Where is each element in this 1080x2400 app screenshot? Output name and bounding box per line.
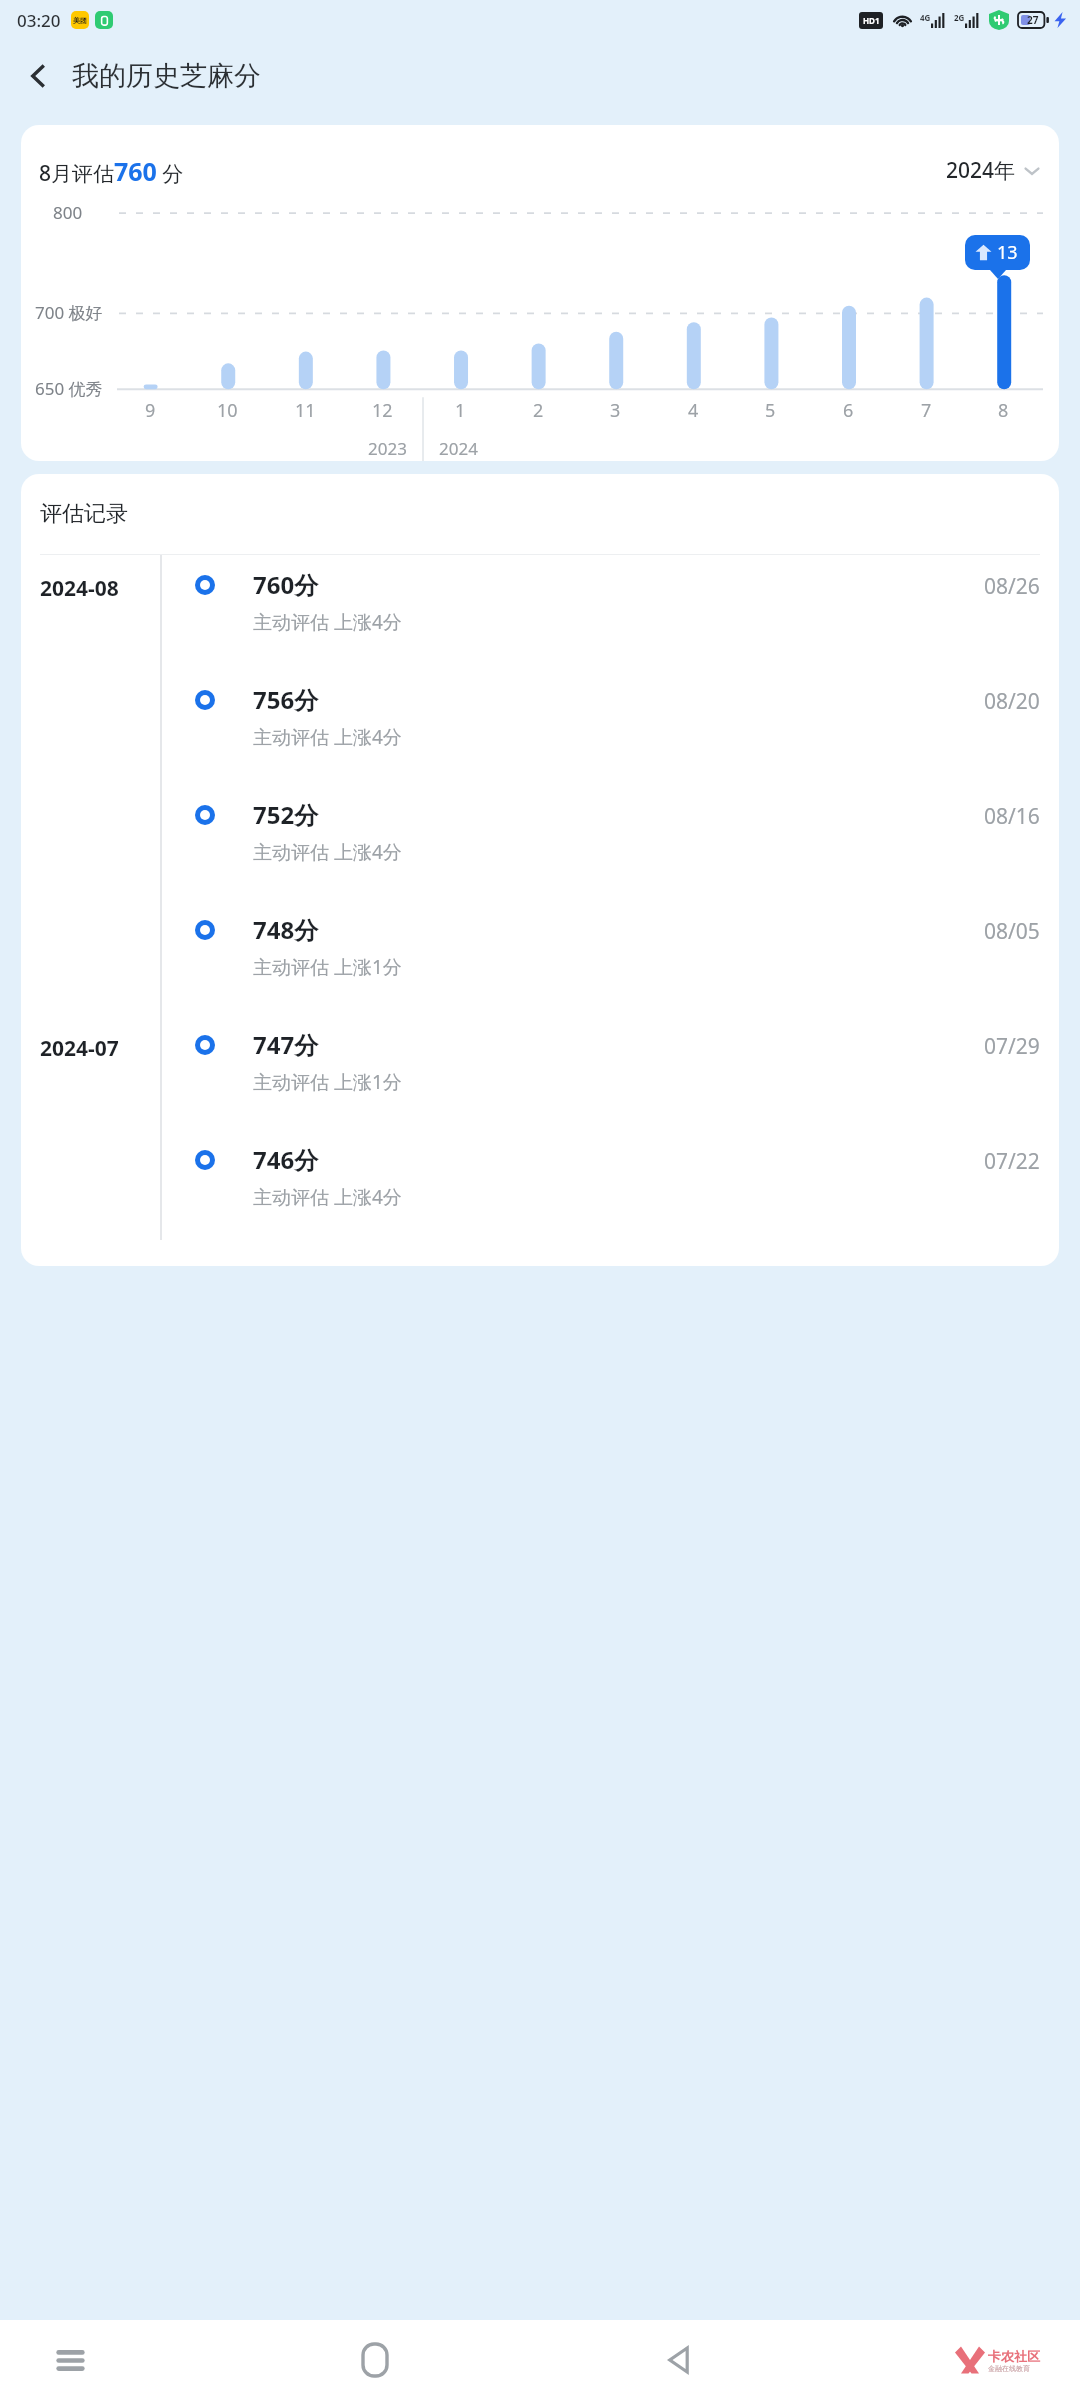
staticText: 8 [998,398,1009,423]
staticText: 评估记录 [40,500,128,528]
staticText: 08/16 [984,802,1040,831]
staticText: 2024-08 [40,574,119,603]
staticText: 748分 [253,913,319,946]
staticText: 2024 [439,437,478,460]
staticText: 2G [954,12,965,23]
staticText: 2024-07 [40,1034,119,1063]
staticText: 7 [921,398,932,423]
button[interactable]: 748分 [21,900,1059,1015]
button[interactable]: 2024年 [941,151,1045,190]
button[interactable]: 2024-07 [21,1015,1059,1130]
button[interactable]: Back [14,51,64,101]
staticText: 27 [1027,13,1039,27]
staticText: 756分 [253,683,319,716]
staticText: 金融在线教育 [988,2364,1030,2373]
staticText: 主动评估 上涨4分 [253,839,402,865]
staticText: 8月评估760 分 [39,154,184,188]
staticText: 3 [610,398,621,423]
staticText: 752分 [253,798,319,831]
staticText: 我的历史芝麻分 [72,59,261,93]
staticText: 07/29 [984,1032,1040,1061]
button[interactable]: 2024-08 [21,555,1059,670]
staticText: 2024年 [946,156,1016,185]
staticText: 747分 [253,1028,319,1061]
staticText: 07/22 [984,1147,1040,1176]
staticText: 650 优秀 [35,377,103,400]
staticText: 13 [997,240,1018,265]
button[interactable]: Back [650,2330,710,2390]
button[interactable]: Recents [40,2330,100,2390]
staticText: 1 [455,398,466,423]
staticText: 08/20 [984,687,1040,716]
staticText: 2 [533,398,544,423]
staticText: 4 [688,398,699,423]
staticText: 760分 [253,568,319,601]
staticText: 746分 [253,1143,319,1176]
staticText: 700 极好 [35,301,103,324]
button[interactable]: 756分 [21,670,1059,785]
button[interactable]: 752分 [21,785,1059,900]
staticText: 10 [217,398,238,423]
staticText: 主动评估 上涨4分 [253,1184,402,1210]
staticText: 主动评估 上涨1分 [253,954,402,980]
button[interactable]: 746分 [21,1130,1059,1245]
staticText: 08/05 [984,917,1040,946]
staticText: 5 [765,398,776,423]
staticText: 4G [920,12,931,23]
staticText: 08/26 [984,572,1040,601]
staticText: 9 [145,398,156,423]
staticText: 主动评估 上涨1分 [253,1069,402,1095]
staticText: 主动评估 上涨4分 [253,724,402,750]
staticText: 2023 [368,437,407,460]
staticText: 800 [53,201,83,224]
staticText: 卡农社区 [988,2348,1040,2364]
staticText: 主动评估 上涨4分 [253,609,402,635]
staticText: HD1 [863,15,880,26]
staticText: 美团 [73,16,87,25]
staticText: 12 [372,398,393,423]
button[interactable]: Home [345,2330,405,2390]
staticText: 11 [295,398,316,423]
staticText: 03:20 [17,9,61,32]
staticText: 6 [843,398,854,423]
